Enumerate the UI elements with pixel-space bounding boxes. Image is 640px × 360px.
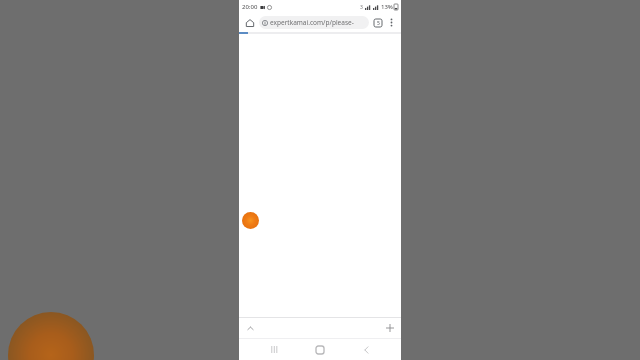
staticText: 5 [377,20,380,27]
staticText: expertkamai.com/p/please- [270,18,354,27]
button[interactable]: Expand toolbar [243,321,257,335]
button[interactable]: Recent apps [263,339,285,360]
staticText: 3 [360,4,363,11]
button[interactable]: More options [385,16,398,29]
button[interactable]: New tab [383,321,397,335]
button[interactable]: Back [355,339,377,360]
button[interactable]: Home [242,15,257,30]
staticText: 13% [381,3,393,11]
button[interactable]: Home [309,339,331,360]
button[interactable]: expertkamai.com/p/please- [259,16,369,29]
staticText: 20:00 [242,3,258,11]
button[interactable]: Switch tabs [371,16,385,30]
